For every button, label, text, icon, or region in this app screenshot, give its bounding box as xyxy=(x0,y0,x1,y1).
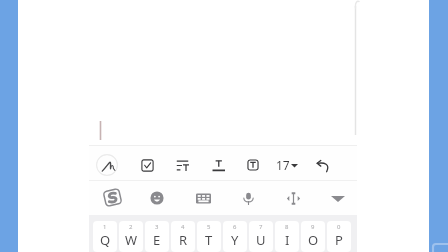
staticText: 2 xyxy=(129,223,133,231)
staticText: 4 xyxy=(181,223,185,231)
staticText: Q xyxy=(100,231,111,249)
staticText: 8 xyxy=(285,223,289,231)
button[interactable]: Font size 17 xyxy=(274,156,300,174)
staticText: I xyxy=(285,231,290,249)
button[interactable]: Keyboard xyxy=(190,185,216,211)
button[interactable]: 6 xyxy=(223,221,247,252)
staticText: U xyxy=(256,231,266,249)
button[interactable]: Emoji xyxy=(144,185,170,211)
button[interactable]: Text underline xyxy=(205,152,231,178)
button[interactable]: 4 xyxy=(171,221,195,252)
button[interactable]: Text style xyxy=(240,152,266,178)
staticText: 1 xyxy=(103,223,107,231)
button[interactable]: 9 xyxy=(301,221,325,252)
staticText: Y xyxy=(231,231,239,249)
staticText: 7 xyxy=(259,223,263,231)
staticText: 6 xyxy=(233,223,237,231)
button[interactable]: Checklist xyxy=(134,152,160,178)
staticText: 0 xyxy=(337,223,341,231)
staticText: O xyxy=(308,231,319,249)
staticText: 3 xyxy=(155,223,159,231)
button[interactable]: 0 xyxy=(327,221,351,252)
staticText: P xyxy=(335,231,343,249)
button[interactable]: Cursor control xyxy=(280,185,306,211)
staticText: 5 xyxy=(207,223,211,231)
button[interactable]: 8 xyxy=(275,221,299,252)
button[interactable]: 2 xyxy=(119,221,143,252)
button[interactable]: Paragraph style xyxy=(169,152,195,178)
button[interactable]: 1 xyxy=(93,221,117,252)
button[interactable]: Handwriting input xyxy=(94,152,120,178)
staticText: T xyxy=(205,231,213,249)
button[interactable]: Voice input xyxy=(235,185,261,211)
button[interactable]: 7 xyxy=(249,221,273,252)
button[interactable]: 3 xyxy=(145,221,169,252)
button[interactable]: Hide keyboard xyxy=(325,185,351,211)
staticText: R xyxy=(179,231,188,249)
button[interactable]: Undo xyxy=(310,152,336,178)
staticText: W xyxy=(125,231,138,249)
staticText: 9 xyxy=(311,223,315,231)
staticText: 17 xyxy=(276,157,290,173)
staticText: E xyxy=(153,231,161,249)
button[interactable]: 5 xyxy=(197,221,221,252)
button[interactable]: Stickers xyxy=(99,184,125,210)
